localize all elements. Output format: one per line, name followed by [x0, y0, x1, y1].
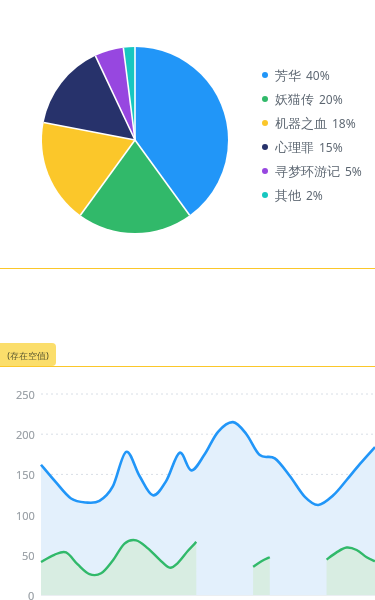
staticText: 100 [16, 508, 35, 523]
staticText: 50 [22, 548, 35, 563]
staticText: 其他 [275, 187, 301, 203]
button[interactable]: 机器之血 [262, 111, 374, 135]
button[interactable]: 寻梦环游记 [262, 159, 374, 183]
staticText: 5% [345, 163, 362, 179]
button[interactable]: Pie chart of movie box office share [0, 0, 250, 268]
staticText: 芳华 [275, 67, 301, 83]
staticText: (存在空值) [7, 349, 49, 361]
staticText: 20% [319, 91, 343, 107]
staticText: 妖猫传 [275, 91, 314, 107]
staticText: 200 [16, 427, 35, 442]
staticText: 2% [306, 187, 323, 203]
button[interactable]: 其他 [262, 183, 374, 207]
staticText: 0 [28, 588, 35, 600]
staticText: 15% [319, 139, 343, 155]
button[interactable]: 妖猫传 [262, 87, 374, 111]
button[interactable]: (存在空值) [0, 343, 56, 366]
staticText: 250 [16, 387, 35, 402]
staticText: 寻梦环游记 [275, 163, 340, 179]
staticText: 150 [16, 467, 35, 482]
staticText: 40% [306, 67, 330, 83]
staticText: 18% [332, 115, 356, 131]
button[interactable]: 心理罪 [262, 135, 374, 159]
button[interactable]: Trend line chart [0, 375, 375, 600]
staticText: 心理罪 [275, 139, 314, 155]
staticText: 机器之血 [275, 115, 327, 131]
button[interactable]: 芳华 [262, 63, 374, 87]
